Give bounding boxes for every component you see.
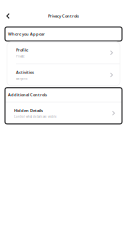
- staticText: Where you Appear: [8, 31, 45, 37]
- button[interactable]: Back: [0, 9, 16, 23]
- staticText: Hidden Details: [14, 108, 43, 113]
- button[interactable]: Profile: [7, 42, 120, 63]
- staticText: Everyone: [16, 77, 28, 80]
- staticText: Additional Controls: [8, 92, 47, 97]
- staticText: Control what details are visible: [14, 115, 57, 118]
- staticText: Profile: [16, 47, 28, 53]
- staticText: Activities: [16, 69, 34, 75]
- button[interactable]: Activities: [7, 64, 120, 86]
- staticText: Privacy Controls: [48, 13, 79, 19]
- staticText: Private: [16, 55, 25, 58]
- button[interactable]: Hidden Details: [5, 102, 122, 124]
